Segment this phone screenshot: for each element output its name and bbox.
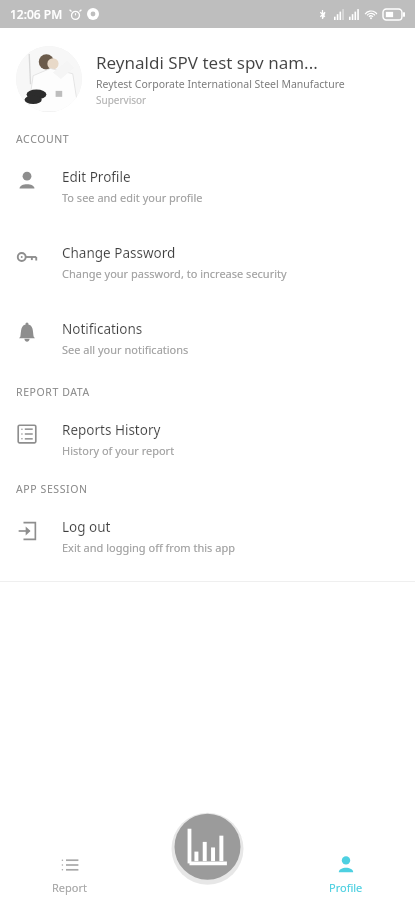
staticText: Reytest Corporate International Steel Ma… [96,77,345,91]
staticText: Report [52,880,87,895]
button[interactable]: Change Password [0,240,415,285]
staticText: APP SESSION [16,482,88,496]
staticText: Change your password, to increase securi… [62,266,287,281]
staticText: REPORT DATA [16,385,90,399]
staticText: History of your report [62,443,175,458]
staticText: Exit and logging off from this app [62,540,235,555]
staticText: Profile [329,880,363,895]
staticText: See all your notifications [62,342,189,357]
button[interactable]: Edit Profile [0,164,415,209]
staticText: Notifications [62,320,143,338]
button[interactable]: Log out [0,514,415,559]
button[interactable]: Reports History [0,417,415,462]
staticText: Reynaldi SPV test spv nam... [96,51,318,74]
staticText: Edit Profile [62,168,131,186]
staticText: Reports History [62,421,161,439]
button[interactable]: Profile [277,851,415,899]
staticText: To see and edit your profile [62,190,203,205]
button[interactable]: Report [0,851,139,899]
staticText: Log out [62,518,111,536]
staticText: Change Password [62,244,176,262]
staticText: ACCOUNT [16,132,70,146]
staticText: Supervisor [96,93,147,107]
staticText: 12:06 PM [10,6,63,22]
button[interactable]: Notifications [0,316,415,361]
